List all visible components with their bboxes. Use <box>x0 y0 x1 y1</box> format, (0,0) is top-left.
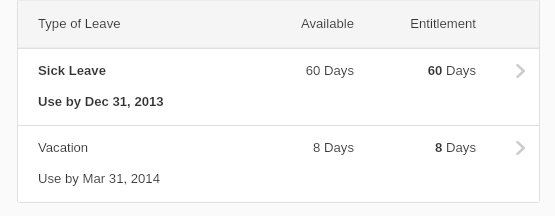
staticText: 60 Days <box>154 63 354 78</box>
staticText: Available <box>154 16 354 31</box>
staticText: Entitlement <box>276 16 476 31</box>
button[interactable]: Sick Leave <box>18 49 539 125</box>
staticText: 8 Days <box>154 140 354 155</box>
staticText: 8 Days <box>276 140 476 155</box>
button[interactable]: Vacation <box>18 126 539 202</box>
staticText: Vacation <box>38 140 89 155</box>
staticText: Sick Leave <box>38 63 106 78</box>
staticText: 60 Days <box>276 63 476 78</box>
button[interactable]: View details <box>504 56 536 86</box>
staticText: Use by Dec 31, 2013 <box>38 94 164 109</box>
button[interactable]: View details <box>504 133 536 163</box>
staticText: Use by Mar 31, 2014 <box>38 171 160 186</box>
staticText: Type of Leave <box>38 16 121 31</box>
